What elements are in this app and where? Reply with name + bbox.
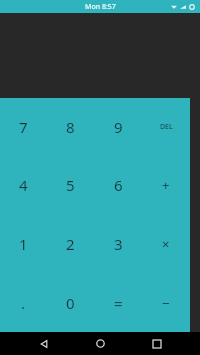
button[interactable]: 4: [0, 156, 47, 214]
button[interactable]: Multiply: [142, 214, 190, 273]
button[interactable]: 3: [94, 214, 142, 273]
staticText: 1: [19, 234, 28, 254]
staticText: ×: [162, 235, 170, 253]
staticText: 4: [19, 175, 28, 195]
staticText: 6: [114, 175, 123, 195]
staticText: 5: [66, 175, 75, 195]
button[interactable]: 1: [0, 214, 47, 273]
button[interactable]: =: [94, 273, 142, 332]
staticText: 9: [114, 117, 123, 137]
staticText: =: [114, 293, 123, 313]
button[interactable]: Plus: [142, 156, 190, 214]
staticText: 8: [66, 117, 75, 137]
button[interactable]: 7: [0, 98, 47, 156]
staticText: 3: [114, 234, 123, 254]
staticText: −: [162, 294, 170, 312]
staticText: 7: [19, 117, 28, 137]
staticText: .: [21, 293, 26, 313]
button[interactable]: Recents: [144, 332, 170, 355]
button[interactable]: 5: [47, 156, 94, 214]
button[interactable]: 9: [94, 98, 142, 156]
staticText: 2: [66, 234, 75, 254]
button[interactable]: Minus: [142, 273, 190, 332]
staticText: DEL: [160, 122, 173, 132]
button[interactable]: 8: [47, 98, 94, 156]
staticText: +: [162, 176, 170, 194]
staticText: Mon 8:57: [85, 2, 116, 12]
button[interactable]: Home: [87, 332, 113, 355]
button[interactable]: Back: [31, 332, 57, 355]
button[interactable]: 2: [47, 214, 94, 273]
button[interactable]: Delete: [142, 98, 190, 156]
button[interactable]: 0: [47, 273, 94, 332]
staticText: 0: [66, 293, 75, 313]
button[interactable]: 6: [94, 156, 142, 214]
